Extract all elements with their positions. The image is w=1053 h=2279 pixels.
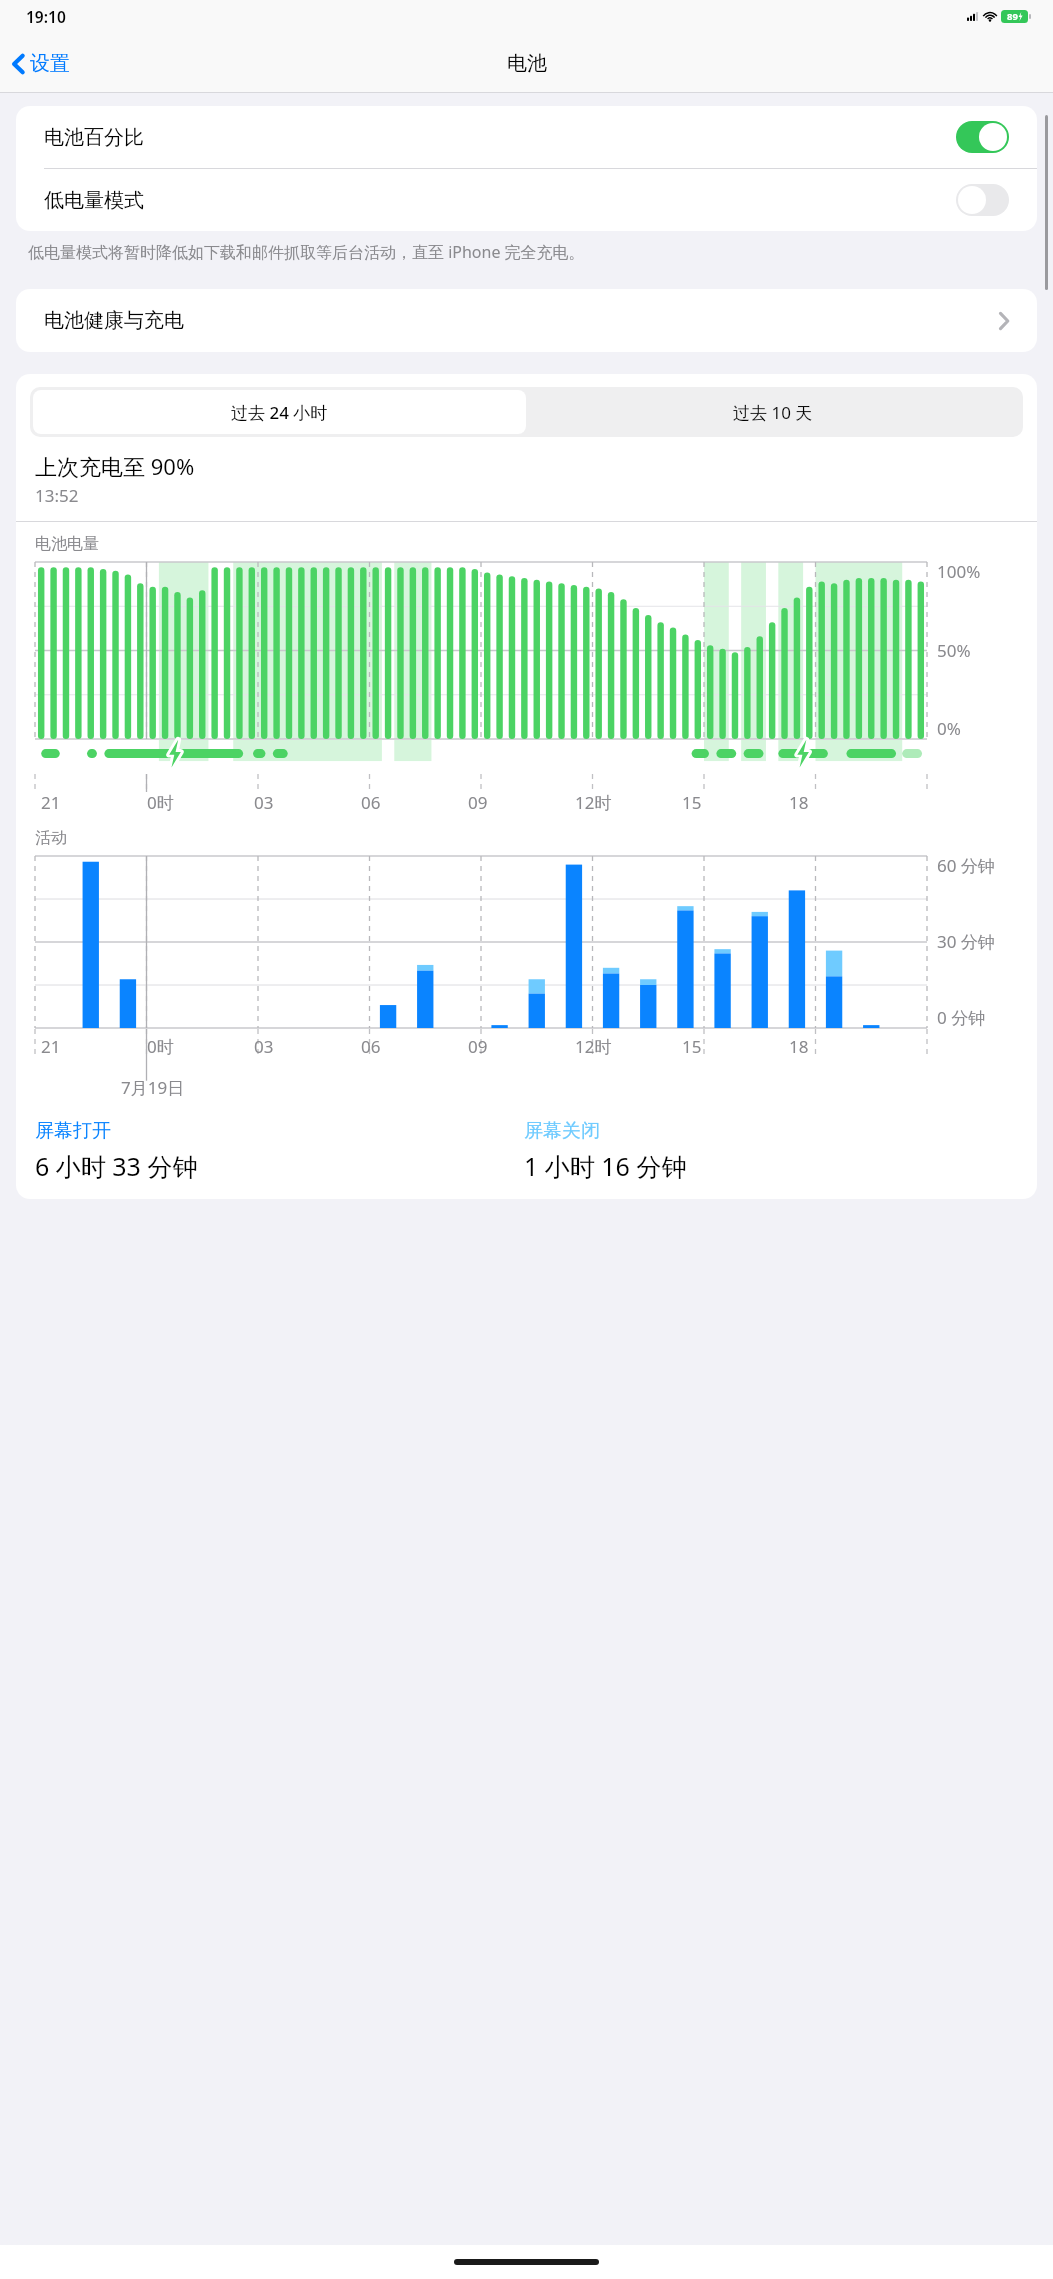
staticText: 15 bbox=[682, 791, 702, 814]
staticText: 12时 bbox=[575, 791, 612, 814]
button[interactable]: On bbox=[956, 121, 1009, 153]
button[interactable]: 设置 bbox=[12, 51, 70, 76]
staticText: 低电量模式将暂时降低如下载和邮件抓取等后台活动，直至 iPhone 完全充电。 bbox=[28, 241, 1025, 263]
staticText: 09 bbox=[468, 1035, 488, 1058]
staticText: 12时 bbox=[575, 1035, 612, 1058]
staticText: 13:52 bbox=[35, 484, 79, 507]
button[interactable]: 过去 10 天 bbox=[526, 390, 1020, 434]
staticText: 06 bbox=[361, 1035, 381, 1058]
staticText: 50% bbox=[937, 639, 971, 662]
staticText: 21 bbox=[41, 1035, 61, 1058]
staticText: 03 bbox=[254, 1035, 274, 1058]
staticText: 7月19日 bbox=[121, 1076, 185, 1099]
staticText: 15 bbox=[682, 1035, 702, 1058]
staticText: 18 bbox=[789, 1035, 809, 1058]
staticText: 屏幕关闭 bbox=[524, 1119, 600, 1143]
staticText: 电池健康与充电 bbox=[44, 308, 999, 333]
button[interactable]: 过去 24 小时 bbox=[33, 390, 526, 434]
staticText: 60 分钟 bbox=[937, 854, 995, 877]
staticText: 电池电量 bbox=[35, 534, 99, 554]
staticText: 30 分钟 bbox=[937, 930, 995, 953]
staticText: 03 bbox=[254, 791, 274, 814]
staticText: 18 bbox=[789, 791, 809, 814]
staticText: 100% bbox=[937, 560, 981, 583]
staticText: 设置 bbox=[30, 51, 70, 76]
staticText: 89 bbox=[1007, 10, 1018, 23]
staticText: 19:10 bbox=[26, 6, 66, 27]
staticText: 0% bbox=[937, 717, 961, 740]
staticText: 屏幕打开 bbox=[35, 1119, 111, 1143]
staticText: 6 小时 33 分钟 bbox=[35, 1149, 198, 1183]
staticText: 0时 bbox=[147, 791, 174, 814]
staticText: 低电量模式 bbox=[44, 188, 956, 213]
button[interactable]: 低电量模式 bbox=[16, 169, 1037, 231]
staticText: 上次充电至 90% bbox=[35, 451, 195, 481]
staticText: 06 bbox=[361, 791, 381, 814]
button[interactable]: 电池健康与充电 bbox=[16, 289, 1037, 352]
staticText: 电池 bbox=[507, 51, 547, 76]
staticText: 09 bbox=[468, 791, 488, 814]
staticText: 21 bbox=[41, 791, 61, 814]
staticText: 过去 24 小时 bbox=[231, 401, 328, 424]
staticText: 0时 bbox=[147, 1035, 174, 1058]
staticText: 过去 10 天 bbox=[733, 401, 813, 424]
button[interactable]: 电池百分比 bbox=[16, 106, 1037, 168]
staticText: 1 小时 16 分钟 bbox=[524, 1149, 687, 1183]
staticText: 0 分钟 bbox=[937, 1006, 986, 1029]
button[interactable]: Off bbox=[956, 184, 1009, 216]
staticText: 活动 bbox=[35, 828, 67, 848]
staticText: 电池百分比 bbox=[44, 125, 956, 150]
